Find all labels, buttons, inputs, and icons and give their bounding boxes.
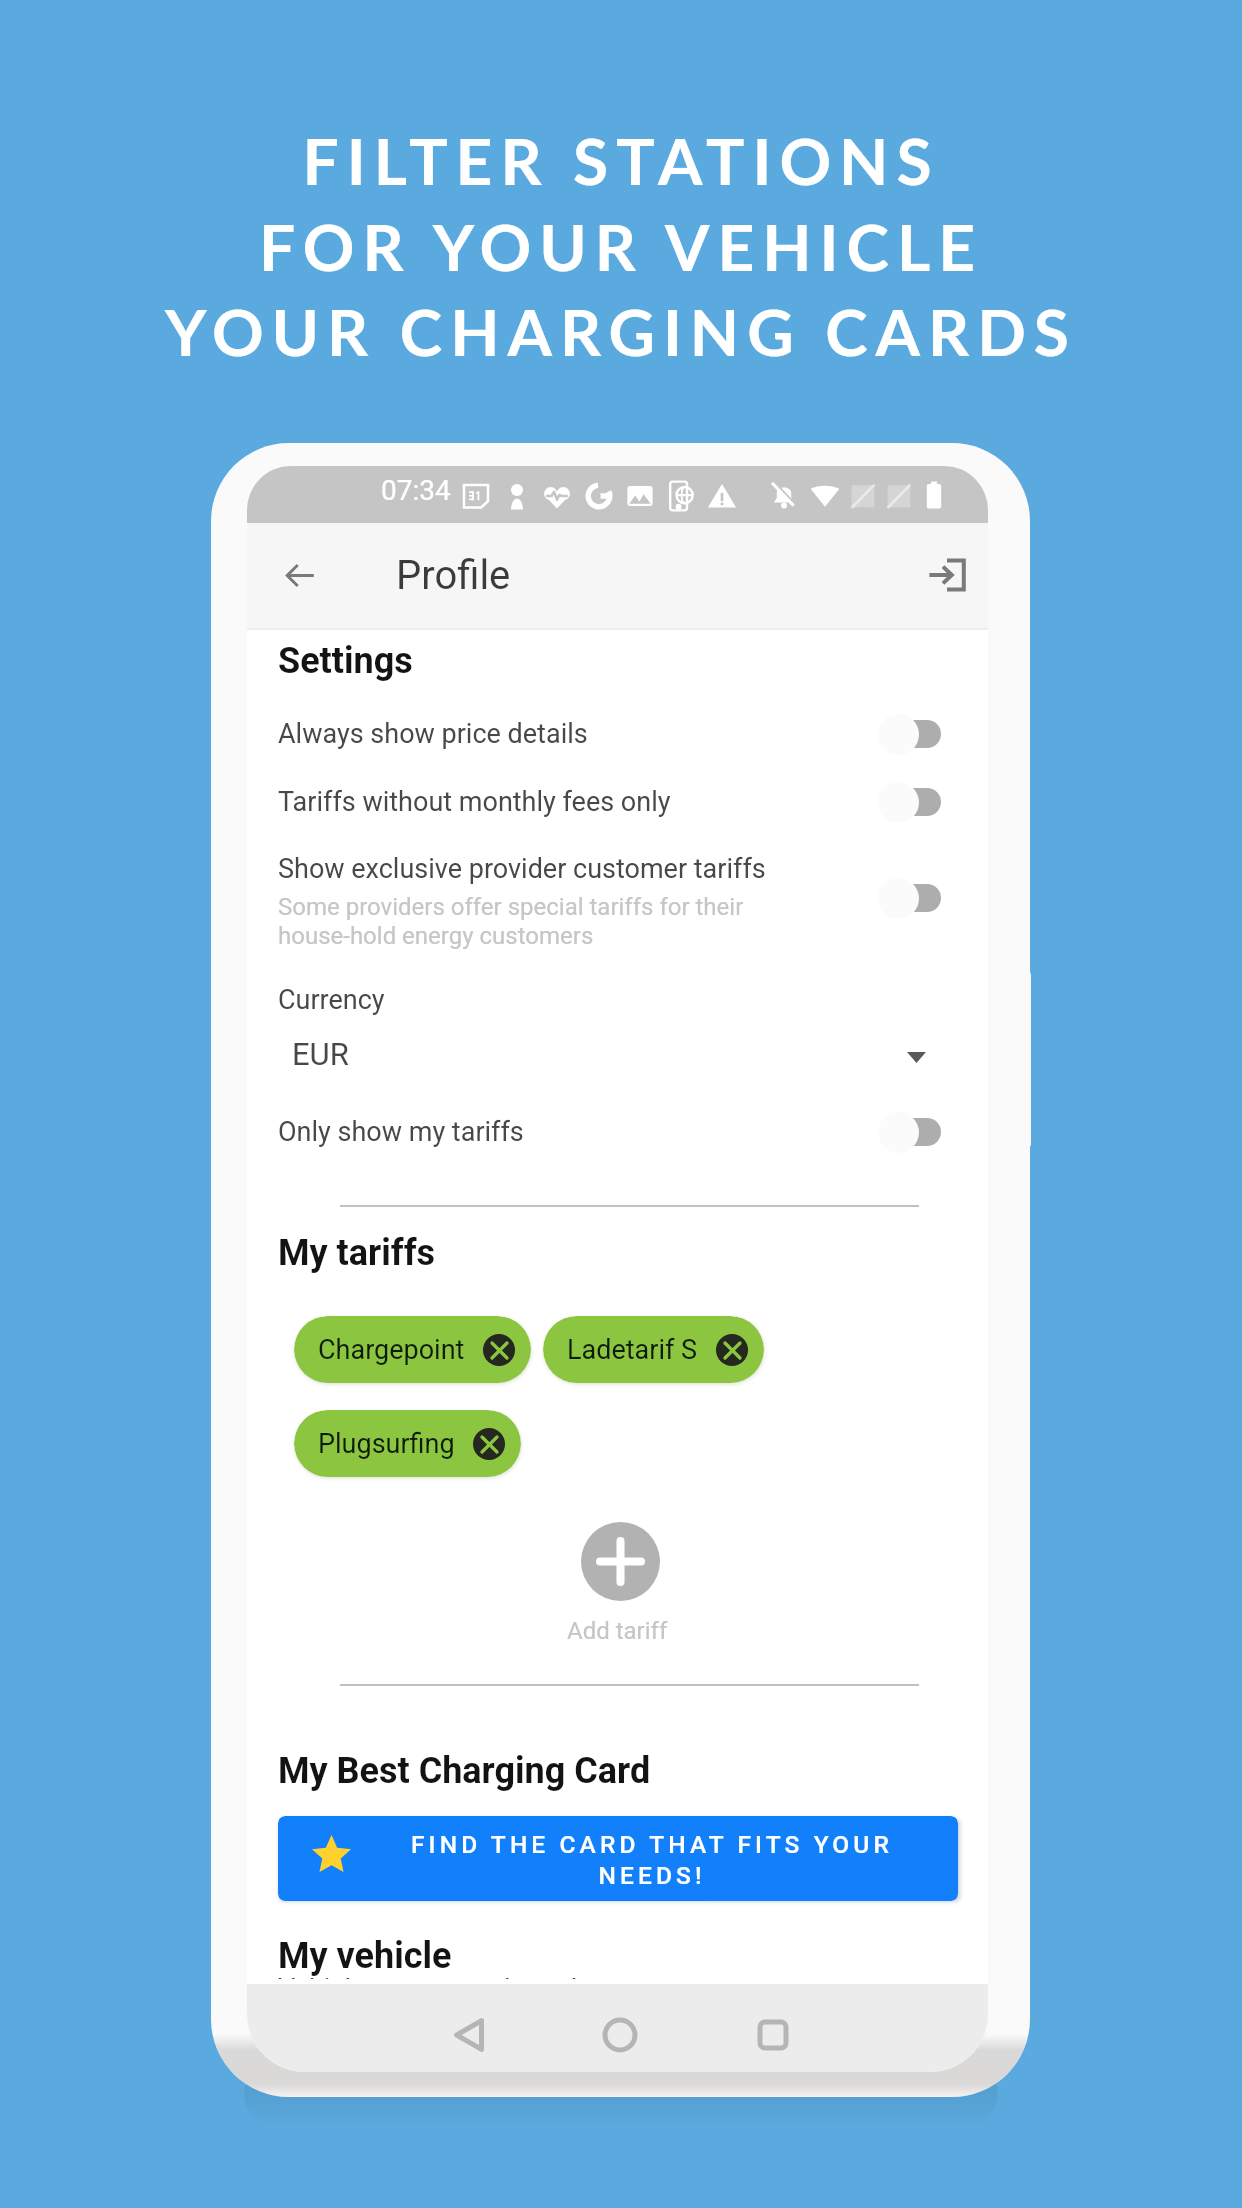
staticText: Settings [278, 640, 413, 682]
button[interactable]: Toggle [867, 699, 957, 769]
staticText: My Best Charging Card [278, 1750, 651, 1792]
staticText: YOUR CHARGING CARDS [0, 293, 1242, 370]
button[interactable]: Currency EUR [292, 1028, 947, 1080]
button[interactable]: Toggle [867, 863, 957, 933]
staticText: FILTER STATIONS [0, 122, 1242, 199]
button[interactable]: Add tariff [581, 1522, 660, 1601]
button[interactable]: Chargepoint [294, 1316, 531, 1383]
button[interactable]: FIND THE CARD THAT FITS YOUR NEEDS! [278, 1816, 958, 1901]
button[interactable]: Plugsurfing [294, 1410, 521, 1477]
button[interactable]: Back [252, 527, 348, 623]
staticText: Vehicle type not selected [278, 1978, 578, 1979]
staticText: Tariffs without monthly fees only [278, 786, 671, 818]
button[interactable]: Recents [733, 1996, 813, 2072]
staticText: Add tariff [567, 1617, 668, 1645]
button[interactable]: Toggle [867, 767, 957, 837]
staticText: Chargepoint [318, 1334, 465, 1366]
staticText: Show exclusive provider customer tariffs [278, 853, 766, 885]
button[interactable]: Toggle [867, 1097, 957, 1167]
button[interactable]: Home [580, 1996, 660, 2072]
button[interactable]: Back [430, 1996, 510, 2072]
staticText: FIND THE CARD THAT FITS YOUR NEEDS! [402, 1830, 902, 1890]
staticText: Always show price details [278, 718, 588, 750]
button[interactable]: Ladetarif S [543, 1316, 764, 1383]
staticText: Only show my tariffs [278, 1116, 524, 1148]
staticText: My vehicle [278, 1935, 452, 1977]
staticText: FOR YOUR VEHICLE [0, 208, 1242, 285]
button[interactable]: Log in [899, 527, 988, 623]
staticText: My tariffs [278, 1232, 436, 1274]
staticText: EUR [292, 1036, 349, 1072]
staticText: Some providers offer special tariffs for… [278, 893, 744, 950]
staticText: Profile [396, 552, 511, 599]
staticText: Currency [278, 984, 385, 1016]
staticText: 07:34 [381, 474, 451, 507]
staticText: Plugsurfing [318, 1428, 455, 1460]
staticText: Ladetarif S [567, 1334, 698, 1366]
